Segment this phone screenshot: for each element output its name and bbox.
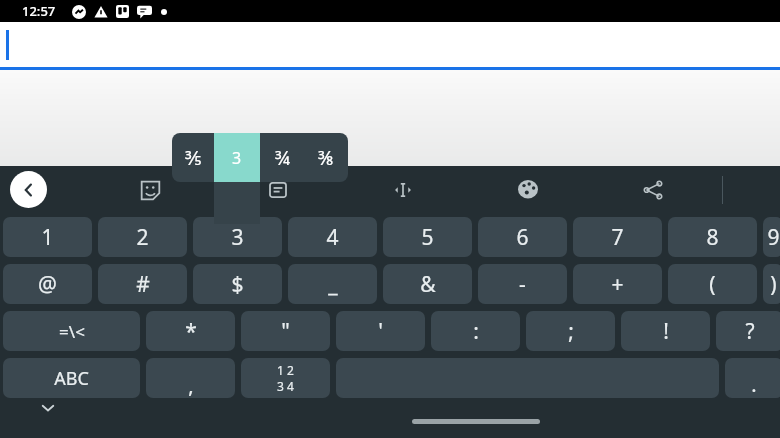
button[interactable]: " bbox=[241, 311, 330, 351]
staticText: ( bbox=[709, 270, 716, 299]
staticText: =\< bbox=[59, 320, 85, 343]
button[interactable]: Stickers bbox=[132, 172, 168, 208]
staticText: " bbox=[281, 317, 290, 346]
button[interactable]: $ bbox=[193, 264, 282, 304]
button[interactable]: 1 bbox=[3, 217, 92, 257]
button[interactable]: , bbox=[146, 358, 235, 398]
button[interactable]: : bbox=[431, 311, 520, 351]
button[interactable]: ⅜ bbox=[304, 133, 348, 182]
button[interactable]: 3 bbox=[214, 133, 260, 182]
button[interactable]: Back bbox=[10, 171, 47, 208]
button[interactable]: Clipboard bbox=[260, 172, 296, 208]
button[interactable]: ( bbox=[668, 264, 757, 304]
button[interactable]: 6 bbox=[478, 217, 567, 257]
button[interactable]: 3 bbox=[214, 133, 260, 182]
button[interactable]: ; bbox=[526, 311, 615, 351]
staticText: 9 bbox=[767, 223, 780, 252]
button[interactable]: 2 bbox=[98, 217, 187, 257]
button[interactable]: + bbox=[573, 264, 662, 304]
staticText: ? bbox=[745, 317, 755, 346]
staticText: _ bbox=[328, 270, 338, 299]
staticText: 7 bbox=[611, 223, 624, 252]
staticText: , bbox=[188, 372, 194, 398]
staticText: 3 bbox=[232, 147, 242, 169]
staticText: ⅗ bbox=[185, 145, 202, 171]
button[interactable]: ' bbox=[336, 311, 425, 351]
button[interactable]: 1 2 bbox=[241, 358, 330, 398]
button[interactable]: - bbox=[478, 264, 567, 304]
staticText: $ bbox=[231, 270, 244, 299]
staticText: ; bbox=[568, 317, 574, 346]
staticText: - bbox=[519, 270, 526, 299]
button[interactable]: & bbox=[383, 264, 472, 304]
staticText: * bbox=[185, 317, 197, 346]
button[interactable]: ¾ bbox=[260, 133, 304, 182]
staticText: 2 bbox=[136, 223, 149, 252]
button[interactable]: 9 bbox=[763, 217, 780, 257]
staticText: + bbox=[611, 270, 624, 299]
staticText: ! bbox=[663, 317, 669, 346]
button[interactable]: ! bbox=[621, 311, 710, 351]
staticText: 3 4 bbox=[277, 378, 294, 394]
staticText: ' bbox=[378, 317, 383, 346]
button[interactable]: 5 bbox=[383, 217, 472, 257]
staticText: 1 2 bbox=[277, 362, 294, 378]
button[interactable]: Share bbox=[635, 172, 671, 208]
button[interactable]: @ bbox=[3, 264, 92, 304]
staticText: ) bbox=[770, 270, 777, 299]
button[interactable]: # bbox=[98, 264, 187, 304]
button[interactable]: ⅗ bbox=[172, 133, 214, 182]
staticText: ABC bbox=[54, 366, 89, 391]
button[interactable]: 4 bbox=[288, 217, 377, 257]
staticText: ¾ bbox=[275, 145, 290, 171]
staticText: 1 bbox=[41, 223, 54, 252]
button[interactable]: Text editing bbox=[385, 172, 421, 208]
button[interactable]: * bbox=[146, 311, 235, 351]
staticText: 12:57 bbox=[22, 2, 56, 20]
staticText: : bbox=[473, 317, 479, 346]
staticText: 3 bbox=[231, 223, 244, 252]
staticText: @ bbox=[38, 270, 57, 299]
staticText: 4 bbox=[326, 223, 339, 252]
button[interactable]: . bbox=[725, 358, 780, 398]
button[interactable]: Theme bbox=[510, 172, 546, 208]
button[interactable]: 8 bbox=[668, 217, 757, 257]
staticText: ⅜ bbox=[318, 145, 334, 171]
staticText: & bbox=[420, 270, 436, 299]
staticText: 8 bbox=[706, 223, 719, 252]
staticText: . bbox=[751, 371, 757, 398]
button[interactable]: _ bbox=[288, 264, 377, 304]
button[interactable]: ABC bbox=[3, 358, 140, 398]
button[interactable]: =\< bbox=[3, 311, 140, 351]
staticText: 3 bbox=[232, 147, 242, 169]
button[interactable]: ) bbox=[763, 264, 780, 304]
staticText: 6 bbox=[516, 223, 529, 252]
button[interactable]: ? bbox=[716, 311, 780, 351]
button[interactable]: 3 bbox=[193, 217, 282, 257]
button[interactable]: 7 bbox=[573, 217, 662, 257]
staticText: # bbox=[136, 270, 150, 299]
button[interactable]: Hide keyboard bbox=[36, 396, 60, 420]
staticText: 5 bbox=[421, 223, 434, 252]
